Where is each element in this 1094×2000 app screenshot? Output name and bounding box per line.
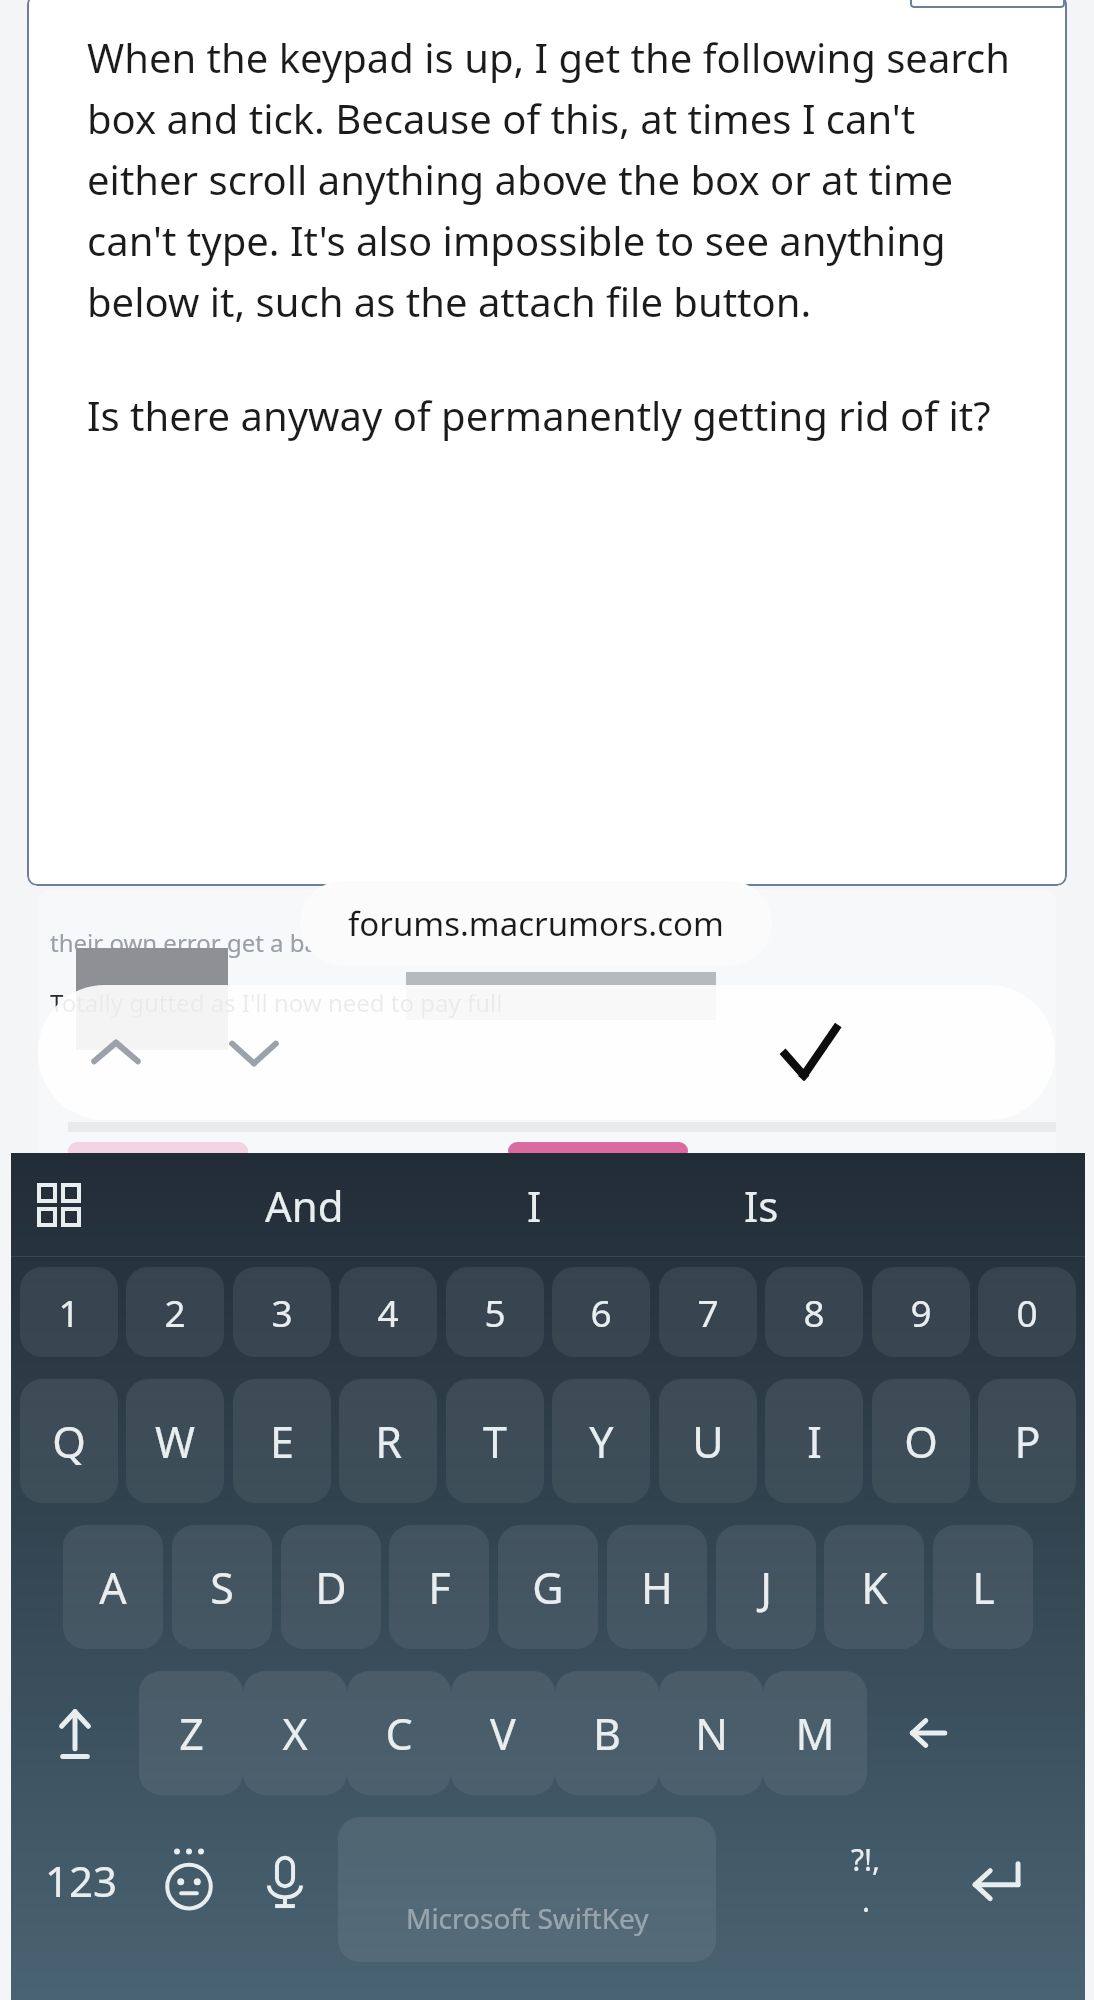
button[interactable]: Enter bbox=[941, 1825, 1051, 1935]
button[interactable]: Q bbox=[20, 1379, 118, 1503]
button[interactable]: J bbox=[716, 1525, 816, 1649]
button[interactable]: K bbox=[824, 1525, 924, 1649]
staticText: 9 bbox=[910, 1287, 932, 1337]
staticText: O bbox=[904, 1412, 938, 1471]
staticText: . bbox=[862, 1880, 871, 1921]
staticText: R bbox=[375, 1412, 402, 1471]
staticText: T bbox=[483, 1412, 507, 1471]
staticText: U bbox=[692, 1412, 724, 1471]
staticText: And bbox=[265, 1177, 344, 1234]
button[interactable]: Voice input bbox=[235, 1825, 335, 1935]
staticText: Z bbox=[179, 1704, 204, 1763]
staticText: When the keypad is up, I get the followi… bbox=[87, 30, 1033, 329]
button[interactable]: Shift bbox=[11, 1671, 139, 1795]
staticText: N bbox=[695, 1704, 728, 1763]
staticText: B bbox=[593, 1704, 621, 1763]
staticText: G bbox=[532, 1558, 564, 1617]
button[interactable]: 4 bbox=[339, 1267, 437, 1357]
button[interactable]: 6 bbox=[552, 1267, 650, 1357]
button[interactable]: L bbox=[933, 1525, 1033, 1649]
button[interactable]: Y bbox=[552, 1379, 650, 1503]
button[interactable]: H bbox=[607, 1525, 707, 1649]
button[interactable]: X bbox=[243, 1671, 347, 1795]
button[interactable]: V bbox=[451, 1671, 555, 1795]
button[interactable]: ?!, bbox=[811, 1825, 921, 1935]
staticText: Totally gutted as I'll now need to pay f… bbox=[50, 986, 503, 1019]
staticText: W bbox=[155, 1412, 195, 1471]
button[interactable]: M bbox=[763, 1671, 867, 1795]
button[interactable]: D bbox=[281, 1525, 381, 1649]
staticText: Q bbox=[52, 1412, 86, 1471]
button[interactable]: P bbox=[978, 1379, 1076, 1503]
button[interactable]: 7 bbox=[659, 1267, 757, 1357]
button[interactable]: B bbox=[555, 1671, 659, 1795]
staticText: 1 bbox=[58, 1287, 80, 1337]
button[interactable]: C bbox=[347, 1671, 451, 1795]
staticText: 0 bbox=[1016, 1287, 1038, 1337]
staticText: ?!, bbox=[851, 1839, 881, 1880]
button[interactable]: I bbox=[765, 1379, 863, 1503]
button[interactable]: 2 bbox=[126, 1267, 224, 1357]
staticText: P bbox=[1014, 1412, 1041, 1471]
staticText: X bbox=[282, 1704, 308, 1763]
staticText: their own error get a ban? bbox=[50, 926, 344, 959]
button[interactable]: Next match bbox=[204, 1003, 304, 1103]
staticText: Y bbox=[589, 1412, 614, 1471]
staticText: 7 bbox=[697, 1287, 719, 1337]
button[interactable]: A bbox=[63, 1525, 163, 1649]
staticText: E bbox=[270, 1412, 294, 1471]
staticText: S bbox=[210, 1558, 234, 1617]
staticText: Microsoft SwiftKey bbox=[406, 1899, 649, 1937]
staticText: forums.macrumors.com bbox=[348, 901, 724, 946]
button[interactable]: S bbox=[172, 1525, 272, 1649]
button[interactable]: Done bbox=[758, 1001, 862, 1105]
staticText: Is bbox=[744, 1177, 779, 1234]
button[interactable]: G bbox=[498, 1525, 598, 1649]
button[interactable]: Emoji bbox=[139, 1825, 239, 1935]
staticText: J bbox=[760, 1558, 772, 1617]
staticText: M bbox=[795, 1704, 835, 1763]
button[interactable]: I bbox=[434, 1153, 634, 1257]
staticText: C bbox=[385, 1704, 413, 1763]
button[interactable]: Keyboard menu bbox=[33, 1179, 85, 1231]
staticText: Is there anyway of permanently getting r… bbox=[87, 388, 991, 442]
staticText: 2 bbox=[164, 1287, 186, 1337]
staticText: I bbox=[527, 1177, 542, 1234]
staticText: 123 bbox=[45, 1852, 118, 1909]
button[interactable]: 123 bbox=[31, 1825, 131, 1935]
button[interactable]: N bbox=[659, 1671, 763, 1795]
staticText: 6 bbox=[590, 1287, 612, 1337]
staticText: 8 bbox=[803, 1287, 825, 1337]
button[interactable]: W bbox=[126, 1379, 224, 1503]
button[interactable]: And bbox=[204, 1153, 404, 1257]
staticText: F bbox=[428, 1558, 451, 1617]
button[interactable]: O bbox=[872, 1379, 970, 1503]
button[interactable]: Is bbox=[661, 1153, 861, 1257]
staticText: 4 bbox=[377, 1287, 399, 1337]
staticText: H bbox=[641, 1558, 673, 1617]
button[interactable]: E bbox=[233, 1379, 331, 1503]
button[interactable]: 9 bbox=[872, 1267, 970, 1357]
staticText: I bbox=[807, 1412, 822, 1471]
button[interactable]: 0 bbox=[978, 1267, 1076, 1357]
staticText: 5 bbox=[484, 1287, 506, 1337]
button[interactable]: Space bbox=[338, 1817, 716, 1962]
button[interactable]: 3 bbox=[233, 1267, 331, 1357]
button[interactable]: U bbox=[659, 1379, 757, 1503]
button[interactable]: forums.macrumors.com bbox=[300, 881, 772, 965]
button[interactable]: 5 bbox=[446, 1267, 544, 1357]
staticText: V bbox=[490, 1704, 516, 1763]
button[interactable]: T bbox=[446, 1379, 544, 1503]
staticText: L bbox=[972, 1558, 995, 1617]
staticText: D bbox=[315, 1558, 347, 1617]
staticText: K bbox=[861, 1558, 888, 1617]
button[interactable]: R bbox=[339, 1379, 437, 1503]
button[interactable]: 8 bbox=[765, 1267, 863, 1357]
staticText: 3 bbox=[271, 1287, 293, 1337]
button[interactable]: Previous match bbox=[66, 1003, 166, 1103]
button[interactable]: Backspace bbox=[867, 1671, 989, 1795]
staticText: A bbox=[99, 1558, 127, 1617]
button[interactable]: F bbox=[389, 1525, 489, 1649]
button[interactable]: Z bbox=[139, 1671, 243, 1795]
button[interactable]: 1 bbox=[20, 1267, 118, 1357]
